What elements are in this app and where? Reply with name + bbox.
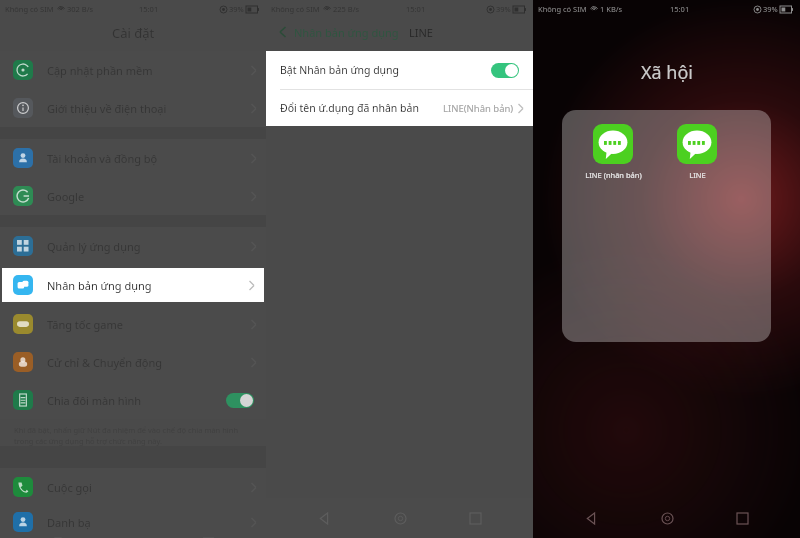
staticText: Cử chỉ & Chuyển động	[47, 355, 162, 370]
staticText: Không có SIM	[538, 4, 587, 14]
staticText: Tăng tốc game	[47, 317, 124, 332]
staticText: Không có SIM	[271, 4, 320, 14]
staticText: Chia đôi màn hình	[47, 393, 142, 408]
staticText: Quản lý ứng dụng	[47, 239, 141, 254]
staticText: 39%	[763, 4, 778, 14]
button[interactable]: Toggle	[491, 63, 519, 78]
staticText: Cập nhật phần mềm	[47, 63, 153, 78]
button[interactable]: Tăng tốc game	[0, 305, 266, 343]
staticText: 15:01	[139, 4, 159, 14]
button[interactable]: Danh bạ	[0, 506, 266, 538]
staticText: Tài khoản và đồng bộ	[47, 151, 158, 166]
staticText: Không có SIM	[5, 4, 54, 14]
button[interactable]: Giới thiệu về điện thoại	[0, 89, 266, 127]
staticText: Bật Nhân bản ứng dụng	[280, 63, 400, 77]
staticText: Cài đặt	[112, 24, 155, 42]
staticText: 15:01	[670, 4, 690, 14]
button[interactable]: Nhân bản ứng dụng	[2, 268, 264, 302]
staticText: LINE	[409, 25, 433, 40]
button[interactable]: LINE	[664, 124, 730, 180]
button[interactable]: Back	[574, 501, 608, 535]
button[interactable]: Google	[0, 177, 266, 215]
button[interactable]: Toggle	[226, 393, 254, 408]
staticText: Xã hội	[641, 60, 693, 85]
staticText: 225 B/s	[333, 4, 360, 14]
button[interactable]: Cập nhật phần mềm	[0, 51, 266, 89]
button[interactable]: Cuộc gọi	[0, 468, 266, 506]
staticText: 302 B/s	[67, 4, 94, 14]
button[interactable]: LINE (nhân bản)	[562, 110, 771, 342]
staticText: LINE	[689, 170, 706, 180]
staticText: LINE(Nhân bản)	[443, 102, 514, 115]
staticText: Nhân bản ứng dụng	[294, 25, 399, 40]
staticText: Cuộc gọi	[47, 480, 92, 495]
staticText: Đổi tên ứ.dụng đã nhân bản	[280, 101, 419, 115]
button[interactable]: Quản lý ứng dụng	[0, 227, 266, 265]
staticText: 15:01	[406, 4, 426, 14]
staticText: Google	[47, 189, 85, 204]
button[interactable]: Bật Nhân bản ứng dụng	[266, 51, 533, 89]
staticText: Giới thiệu về điện thoại	[47, 101, 167, 116]
button[interactable]: Đổi tên ứ.dụng đã nhân bản	[266, 90, 533, 126]
staticText: Nhân bản ứng dụng	[47, 278, 152, 293]
staticText: 39%	[496, 4, 511, 14]
button[interactable]: Home	[650, 501, 684, 535]
button[interactable]: Back	[272, 21, 294, 43]
button[interactable]: Cử chỉ & Chuyển động	[0, 343, 266, 381]
staticText: Danh bạ	[47, 515, 91, 530]
button[interactable]: LINE (nhân bản)	[580, 124, 646, 180]
staticText: LINE (nhân bản)	[585, 170, 642, 180]
staticText: 1 KB/s	[600, 4, 623, 14]
button[interactable]: Chia đôi màn hình	[0, 381, 266, 419]
button[interactable]: Recents	[725, 501, 759, 535]
button[interactable]: Tài khoản và đồng bộ	[0, 139, 266, 177]
staticText: 39%	[229, 4, 244, 14]
